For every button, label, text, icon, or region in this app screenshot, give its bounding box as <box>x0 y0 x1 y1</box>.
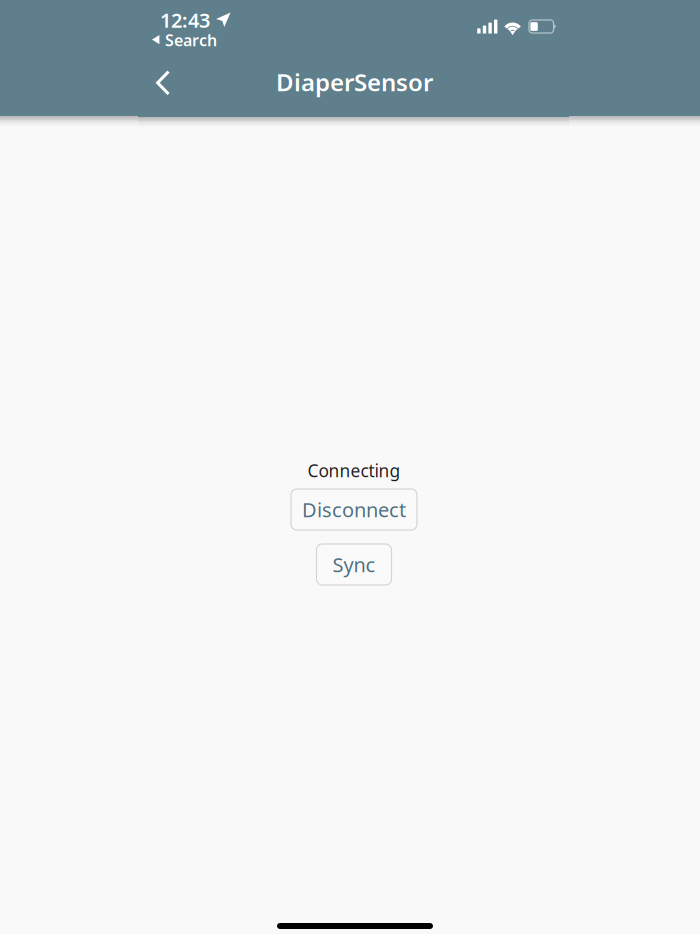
staticText: 12:43 <box>160 7 210 33</box>
staticText: Disconnect <box>302 496 406 523</box>
staticText: Sync <box>332 551 375 578</box>
staticText: Search <box>165 29 217 51</box>
button[interactable]: Sync <box>316 544 391 585</box>
staticText: DiaperSensor <box>276 66 433 98</box>
button[interactable]: Disconnect <box>291 489 417 530</box>
button[interactable]: Back <box>140 61 186 105</box>
staticText: Connecting <box>307 459 400 482</box>
